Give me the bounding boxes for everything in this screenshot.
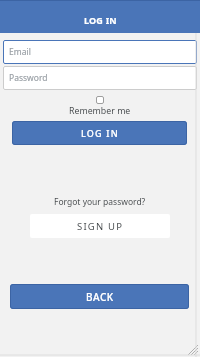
staticText: BACK [86, 290, 114, 304]
staticText: LOG IN [81, 127, 119, 139]
button[interactable]: LOG IN [0, 7, 200, 33]
staticText: SIGN UP [77, 220, 124, 233]
button[interactable]: Forgot your password? [54, 196, 146, 208]
button[interactable]: SIGN UP [30, 214, 170, 238]
button[interactable]: LOG IN [12, 121, 187, 145]
staticText: Password [9, 72, 48, 84]
button[interactable]: Remember me [0, 96, 200, 117]
staticText: Remember me [69, 105, 131, 117]
staticText: Email [9, 46, 31, 58]
button[interactable]: Password [3, 66, 197, 90]
button[interactable]: Email [3, 40, 197, 64]
staticText: LOG IN [84, 14, 117, 26]
button[interactable]: BACK [10, 284, 189, 309]
